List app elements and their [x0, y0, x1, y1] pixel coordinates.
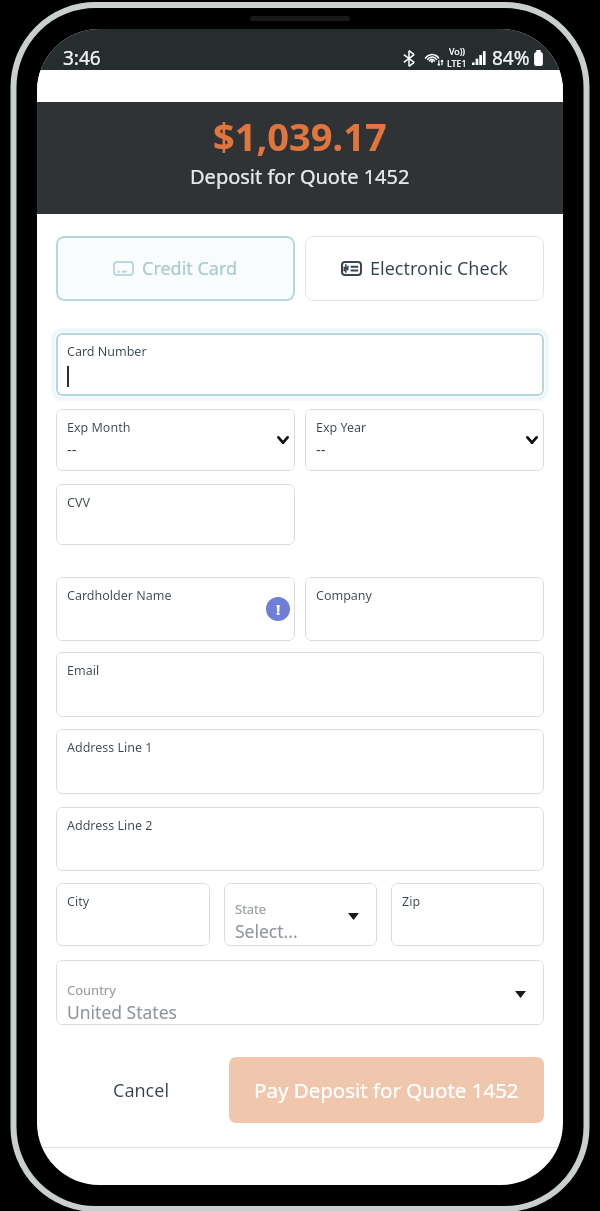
- staticText: Exp Year: [316, 419, 367, 436]
- staticText: Deposit for Quote 1452: [190, 163, 410, 190]
- staticText: City: [67, 893, 90, 910]
- staticText: Exp Month: [67, 419, 131, 436]
- button[interactable]: Cardholder Name: [56, 577, 295, 641]
- staticText: Address Line 1: [67, 739, 153, 756]
- button[interactable]: Credit Card: [56, 236, 295, 301]
- button[interactable]: Card Number: [56, 333, 544, 396]
- button[interactable]: City: [56, 883, 210, 946]
- staticText: Address Line 2: [67, 817, 153, 834]
- other: Open Exp Year dropdown: [526, 436, 538, 444]
- button[interactable]: Exp Year: [305, 409, 544, 471]
- staticText: 3:46: [63, 45, 101, 71]
- button[interactable]: Pay Deposit for Quote 1452: [229, 1057, 544, 1123]
- button[interactable]: Address Line 1: [56, 729, 544, 794]
- staticText: Electronic Check: [370, 256, 508, 281]
- staticText: Country: [67, 981, 116, 999]
- staticText: Credit Card: [142, 256, 238, 281]
- button[interactable]: Exp Month: [56, 409, 295, 471]
- staticText: --: [67, 439, 77, 459]
- staticText: Email: [67, 662, 100, 679]
- button[interactable]: Electronic Check: [305, 236, 544, 301]
- staticText: Zip: [402, 893, 421, 910]
- other: Open Country dropdown: [515, 991, 526, 998]
- staticText: LTE1: [447, 57, 467, 69]
- staticText: Cancel: [113, 1078, 170, 1103]
- button[interactable]: Zip: [391, 883, 544, 946]
- button[interactable]: CVV: [56, 484, 295, 545]
- staticText: 84%: [492, 45, 530, 71]
- button[interactable]: Company: [305, 577, 544, 641]
- other: Required field: [266, 597, 290, 621]
- other: Open State dropdown: [348, 913, 359, 920]
- staticText: Pay Deposit for Quote 1452: [254, 1076, 519, 1104]
- button[interactable]: Email: [56, 652, 544, 717]
- button[interactable]: Country: [56, 960, 544, 1025]
- staticText: Vo)): [449, 45, 466, 57]
- staticText: Select...: [235, 919, 298, 943]
- staticText: Cardholder Name: [67, 587, 172, 604]
- other: Open Exp Month dropdown: [277, 436, 289, 444]
- staticText: $1,039.17: [213, 110, 387, 162]
- staticText: Company: [316, 587, 372, 604]
- staticText: United States: [67, 1000, 177, 1024]
- staticText: --: [316, 439, 326, 459]
- button[interactable]: Address Line 2: [56, 807, 544, 871]
- staticText: !: [276, 599, 281, 619]
- button[interactable]: Cancel: [56, 1057, 226, 1123]
- button[interactable]: State: [224, 883, 377, 946]
- staticText: Card Number: [67, 343, 147, 360]
- staticText: State: [235, 900, 267, 918]
- staticText: CVV: [67, 494, 90, 511]
